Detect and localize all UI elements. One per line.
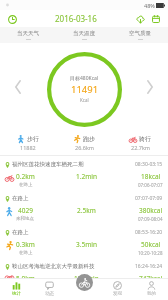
- staticText: 4029: [18, 206, 33, 215]
- staticText: Kcal: [80, 97, 89, 103]
- button[interactable]: 鞍山区考海地逆北京大学最新科技: [0, 258, 168, 278]
- button[interactable]: Download: [133, 12, 147, 26]
- staticText: 22.7km: [131, 144, 150, 151]
- button[interactable]: Previous day: [11, 80, 25, 94]
- staticText: 动态: [45, 291, 54, 297]
- button[interactable]: 我的: [134, 278, 168, 300]
- staticText: 当天天气: [17, 30, 39, 37]
- button[interactable]: 步行: [0, 131, 56, 155]
- staticText: 鞍山区考海地逆北京大学最新科技: [12, 263, 133, 270]
- staticText: 3.5min: [76, 240, 97, 249]
- button[interactable]: Calendar: [149, 12, 163, 26]
- staticText: 13.2min: [74, 274, 99, 278]
- staticText: 福州区莲花快速度车栖死二期: [12, 161, 133, 168]
- staticText: 26.6km: [75, 144, 94, 151]
- staticText: 747kcal: [139, 274, 163, 278]
- staticText: 跑步: [83, 135, 95, 143]
- button[interactable]: 骑行: [112, 131, 168, 155]
- staticText: 10:20-10:28: [138, 250, 163, 256]
- staticText: 11491: [71, 83, 99, 96]
- staticText: 0.3km: [16, 240, 35, 249]
- button[interactable]: 空气质量: [112, 27, 168, 43]
- staticText: 380kcal: [139, 206, 163, 215]
- staticText: 骑行: [139, 135, 151, 143]
- staticText: 统计: [12, 291, 21, 297]
- button[interactable]: 统计: [0, 278, 33, 300]
- staticText: 08:30-03:15: [135, 161, 163, 168]
- staticText: 在路上: [12, 195, 133, 202]
- button[interactable]: History: [5, 12, 19, 26]
- staticText: 07:07-07:09: [135, 195, 163, 202]
- button[interactable]: 当天天气: [0, 27, 56, 43]
- button[interactable]: 在路上: [0, 190, 168, 224]
- button[interactable]: Start cycling: [76, 274, 93, 291]
- button[interactable]: 福州区莲花快速度车栖死二期: [0, 156, 168, 190]
- staticText: 空气质量: [129, 30, 151, 37]
- staticText: 在路上: [19, 182, 33, 188]
- button[interactable]: 当天温度: [56, 27, 112, 43]
- button[interactable]: 在路上: [0, 224, 168, 258]
- staticText: 07:09-08:04: [138, 216, 163, 222]
- staticText: 48%: [144, 2, 155, 9]
- button[interactable]: 发现: [100, 278, 134, 300]
- staticText: 2.5km: [77, 206, 96, 215]
- staticText: 我的: [147, 291, 156, 297]
- staticText: 5.0km: [16, 274, 35, 278]
- staticText: 07:06-07:07: [138, 182, 163, 188]
- button[interactable]: Next day: [143, 80, 157, 94]
- button[interactable]: 动态: [33, 278, 66, 300]
- staticText: 18kcal: [141, 172, 161, 181]
- staticText: 0.2km: [16, 172, 35, 181]
- staticText: 目标480Kcal: [70, 75, 99, 82]
- staticText: 1.2min: [76, 172, 97, 181]
- staticText: 11882: [20, 144, 36, 151]
- staticText: 08:53-16:20: [135, 229, 163, 236]
- button[interactable]: 跑步: [56, 131, 112, 155]
- staticText: 在路上: [19, 250, 33, 256]
- staticText: 50kcal: [141, 240, 161, 249]
- staticText: 2016-03-16: [55, 13, 97, 24]
- staticText: 来和地点: [16, 216, 34, 222]
- staticText: 当天温度: [73, 30, 95, 37]
- staticText: 发现: [113, 291, 122, 297]
- staticText: 步行: [27, 135, 39, 143]
- staticText: 16:24-16:24: [135, 263, 163, 270]
- staticText: 在路上: [12, 229, 133, 236]
